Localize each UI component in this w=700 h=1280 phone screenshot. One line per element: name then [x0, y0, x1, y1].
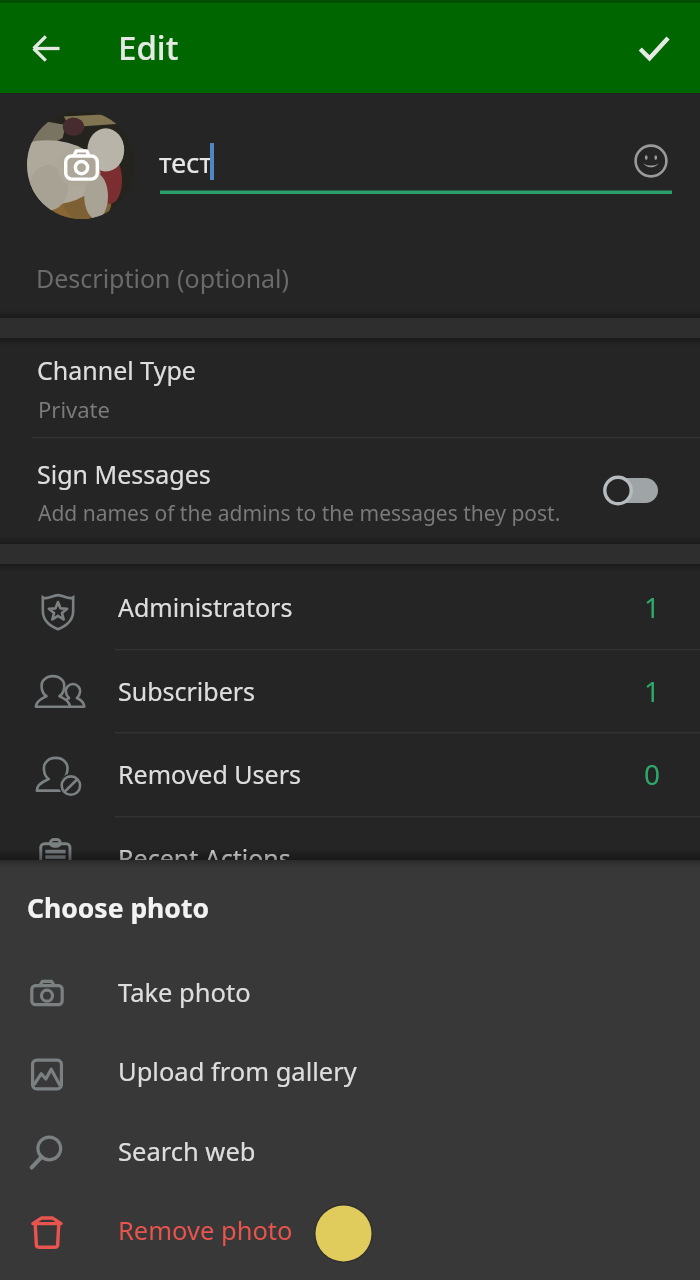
button[interactable]: Search web	[0, 1113, 700, 1192]
button[interactable]: Emoji	[623, 133, 679, 189]
button[interactable]: Save	[618, 12, 690, 84]
staticText: Search web	[118, 1134, 256, 1169]
staticText: Subscribers	[118, 674, 256, 708]
button[interactable]: Upload from gallery	[0, 1033, 700, 1112]
staticText: Choose photo	[27, 890, 209, 926]
button[interactable]: Recent Actions	[0, 817, 700, 901]
staticText: Remove photo	[118, 1213, 293, 1248]
staticText: 0	[644, 755, 661, 793]
staticText: 1	[644, 672, 661, 710]
button[interactable]: Administrators	[0, 566, 700, 650]
button[interactable]: Subscribers	[0, 650, 700, 733]
staticText: Upload from gallery	[118, 1054, 357, 1089]
button[interactable]: Channel Type	[0, 338, 700, 437]
staticText: тест	[159, 144, 213, 181]
staticText: Edit	[118, 25, 179, 70]
button[interactable]: Back	[10, 12, 82, 84]
staticText: Description (optional)	[36, 261, 290, 295]
staticText: Private	[38, 394, 110, 424]
button[interactable]: Sign Messages	[0, 439, 700, 544]
button[interactable]: Remove photo	[0, 1192, 700, 1271]
staticText: Add names of the admins to the messages …	[38, 499, 561, 528]
staticText: Administrators	[118, 590, 293, 624]
staticText: Channel Type	[37, 353, 196, 387]
staticText: Take photo	[118, 975, 251, 1010]
button[interactable]: Change photo	[27, 111, 135, 219]
staticText: Sign Messages	[37, 457, 211, 491]
button[interactable]: Take photo	[0, 954, 700, 1033]
staticText: Recent Actions	[118, 841, 291, 875]
staticText: Removed Users	[118, 757, 301, 791]
staticText: 1	[644, 588, 661, 626]
button[interactable]: Removed Users	[0, 733, 700, 817]
